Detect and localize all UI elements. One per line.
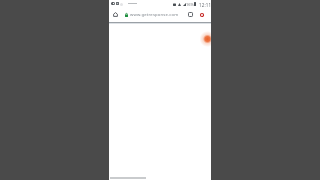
button[interactable]: Tabs bbox=[186, 10, 195, 19]
button[interactable]: More options bbox=[197, 10, 206, 19]
button[interactable]: Home bbox=[111, 10, 120, 19]
staticText: 16% bbox=[186, 2, 194, 7]
staticText: www.getresponse.com bbox=[130, 12, 179, 18]
staticText: 12:11 bbox=[199, 2, 211, 8]
